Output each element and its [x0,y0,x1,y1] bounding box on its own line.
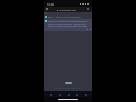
button[interactable]: Nav 4 [83,92,88,97]
staticText: Sure — here is a short summary [48,16,81,19]
button[interactable]: chat.openai.com [57,9,77,12]
button[interactable]: Nav 2 [66,92,71,97]
button[interactable]: Nav 1 [57,92,62,97]
staticText: 10:38 [47,3,54,7]
button[interactable]: Message input [65,82,72,84]
staticText: ChatGPT can make mistakes. [54,87,82,90]
staticText: Quantum computers use qubits which can b… [48,20,90,27]
button[interactable]: Sure — here is a short summary [45,16,92,19]
staticText: chat.openai.com [59,9,77,12]
button[interactable]: Quantum computers use qubits which can b… [44,19,92,31]
button[interactable]: Nav 0 [48,92,53,97]
button[interactable]: Nav 3 [74,92,79,97]
